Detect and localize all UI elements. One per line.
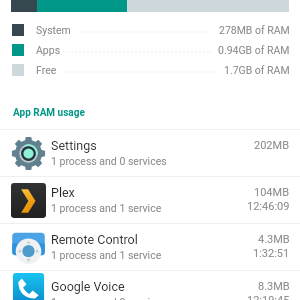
staticText: Google Voice — [51, 279, 125, 294]
staticText: 4.3MB — [258, 233, 290, 246]
staticText: 12:19:45 — [247, 294, 290, 300]
staticText: 1 process and 1 service — [51, 249, 162, 261]
staticText: App RAM usage — [13, 107, 85, 119]
staticText: 1 process and 1 service — [51, 202, 162, 214]
staticText: 202MB — [254, 139, 290, 152]
staticText: 1 process and 0 services — [51, 155, 167, 167]
button[interactable]: Settings — [0, 130, 300, 176]
staticText: 0.94GB of RAM — [218, 44, 290, 56]
staticText: 8.3MB — [258, 280, 290, 293]
staticText: Settings — [51, 138, 97, 153]
staticText: Plex — [51, 185, 75, 200]
staticText: 104MB — [254, 186, 290, 199]
button[interactable]: Google Voice — [0, 271, 300, 300]
staticText: 1 process and 0 services — [51, 296, 167, 300]
staticText: Free — [36, 64, 57, 76]
staticText: 12:46:09 — [247, 200, 290, 213]
staticText: 1.7GB of RAM — [224, 64, 290, 76]
staticText: System — [36, 24, 71, 36]
staticText: 278MB of RAM — [219, 24, 290, 36]
staticText: Remote Control — [51, 232, 138, 247]
staticText: Apps — [36, 44, 61, 56]
button[interactable]: Remote Control — [0, 224, 300, 270]
button[interactable]: Plex — [0, 177, 300, 223]
staticText: 1:32:51 — [253, 247, 290, 260]
